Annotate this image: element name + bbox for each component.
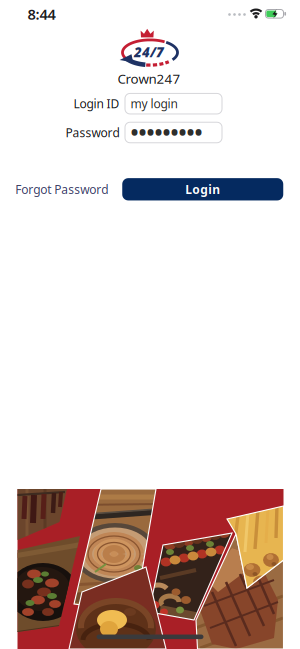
staticText: 8:44 bbox=[27, 4, 55, 24]
textField[interactable]: my login bbox=[130, 96, 222, 112]
staticText: Password bbox=[65, 124, 119, 140]
button[interactable]: Login bbox=[122, 178, 283, 200]
staticText: Login bbox=[185, 181, 220, 197]
staticText: Login ID bbox=[73, 96, 119, 112]
staticText: my login bbox=[130, 96, 177, 112]
staticText: Crown247 bbox=[117, 70, 180, 87]
staticText: Forgot Password bbox=[15, 181, 108, 197]
staticText: ••••••••• bbox=[130, 118, 202, 147]
secureTextField[interactable]: 123456789 bbox=[130, 118, 222, 147]
staticText: 24/7 bbox=[134, 43, 164, 61]
button[interactable]: Forgot Password bbox=[15, 181, 108, 197]
